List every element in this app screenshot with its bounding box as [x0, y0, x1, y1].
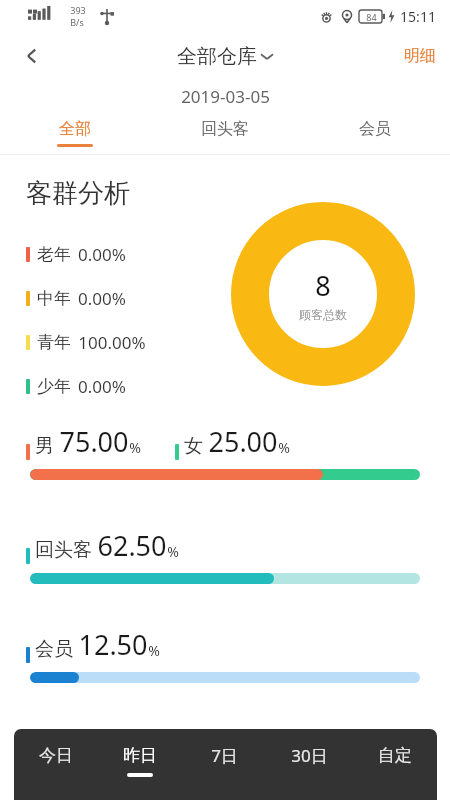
staticText: 男	[35, 434, 54, 458]
staticText: 2019-03-05	[181, 85, 270, 108]
button[interactable]: 会员	[26, 626, 160, 663]
staticText: 老年	[37, 244, 71, 265]
staticText: 0.00%	[78, 375, 126, 398]
staticText: 会员	[35, 637, 73, 661]
staticText: 少年	[37, 376, 71, 397]
button[interactable]: Back	[10, 34, 54, 78]
staticText: 0.00%	[78, 287, 126, 310]
button[interactable]: 女	[175, 423, 290, 460]
staticText: 青年	[37, 332, 71, 353]
button[interactable]: 全部仓库	[177, 44, 273, 69]
staticText: 中年	[37, 288, 71, 309]
button[interactable]: 昨日	[98, 729, 182, 787]
staticText: 全部仓库	[177, 44, 257, 69]
button[interactable]: 老年	[26, 243, 126, 266]
staticText: 75.00	[59, 423, 129, 460]
button[interactable]: 中年	[26, 287, 126, 310]
staticText: %	[167, 542, 179, 561]
button[interactable]: 青年	[26, 331, 146, 354]
staticText: %	[278, 438, 290, 457]
staticText: 回头客	[35, 538, 92, 562]
staticText: 0.00%	[78, 243, 126, 266]
staticText: %	[148, 641, 160, 660]
button[interactable]: 今日	[14, 729, 98, 787]
staticText: 全部	[59, 119, 91, 139]
staticText: 30日	[291, 744, 328, 767]
staticText: 8	[315, 267, 331, 304]
button[interactable]: 男	[26, 423, 141, 460]
button[interactable]: 7日	[182, 729, 267, 787]
staticText: B/s	[70, 16, 84, 28]
button[interactable]: 30日	[267, 729, 352, 787]
button[interactable]: 回头客	[26, 527, 179, 564]
button[interactable]: 会员	[300, 112, 450, 154]
button[interactable]: 少年	[26, 375, 126, 398]
staticText: 今日	[39, 745, 73, 766]
button[interactable]: 回头客	[150, 112, 300, 154]
button[interactable]: 自定	[352, 729, 437, 787]
staticText: 84	[366, 11, 377, 23]
staticText: 女	[184, 434, 203, 458]
staticText: 62.50	[97, 527, 167, 564]
button[interactable]: 全部	[0, 112, 150, 154]
button[interactable]: 明细	[404, 46, 436, 66]
staticText: 12.50	[78, 626, 148, 663]
staticText: 自定	[378, 745, 412, 766]
staticText: 25.00	[208, 423, 278, 460]
staticText: 客群分析	[26, 177, 130, 210]
staticText: 回头客	[201, 119, 249, 139]
staticText: 明细	[404, 46, 436, 66]
staticText: 15:11	[400, 7, 436, 26]
staticText: 393	[70, 4, 86, 16]
staticText: 100.00%	[78, 331, 146, 354]
staticText: 昨日	[123, 745, 157, 766]
staticText: 顾客总数	[299, 307, 347, 322]
staticText: 7日	[211, 744, 238, 767]
staticText: 会员	[359, 119, 391, 139]
staticText: %	[129, 438, 141, 457]
